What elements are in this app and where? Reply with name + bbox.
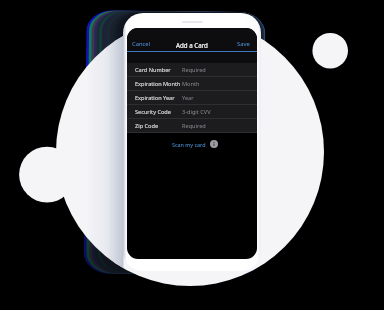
button[interactable]: Save (237, 40, 250, 48)
staticText: 3-digit CVV (182, 108, 211, 116)
button[interactable]: Expiration Year (127, 91, 257, 105)
staticText: Cancel (132, 40, 151, 48)
staticText: Card Number (135, 66, 171, 74)
other: More info (210, 140, 218, 148)
staticText: Save (237, 40, 250, 48)
staticText: Add a Card (176, 41, 208, 49)
button[interactable]: Security Code (127, 105, 257, 119)
staticText: Security Code (135, 108, 171, 116)
staticText: Zip Code (135, 122, 159, 130)
button[interactable]: Scan my card (172, 138, 218, 150)
button[interactable]: Expiration Month (127, 77, 257, 91)
staticText: Required (182, 122, 206, 130)
staticText: Scan my card (172, 141, 206, 148)
button[interactable]: Card Number (127, 63, 257, 77)
staticText: Year (182, 94, 194, 102)
staticText: Expiration Month (135, 80, 181, 88)
staticText: Required (182, 66, 206, 74)
staticText: Expiration Year (135, 94, 175, 102)
button[interactable]: Cancel (132, 40, 151, 48)
staticText: Month (182, 80, 200, 88)
button[interactable]: Zip Code (127, 119, 257, 133)
